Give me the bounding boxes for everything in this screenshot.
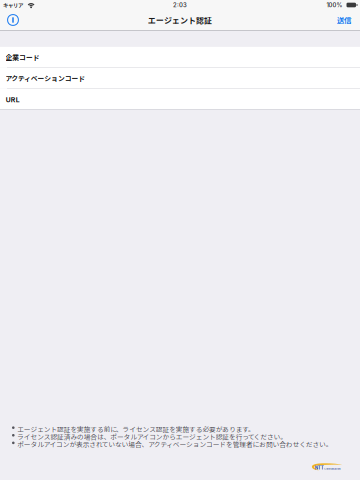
staticText: ポータルアイコンが表示されていない場合、アクティベーションコードを管理者にお問い… <box>17 439 333 449</box>
staticText: キャリア <box>3 1 23 9</box>
staticText: 100% <box>326 1 342 9</box>
button[interactable]: 送信 <box>327 10 351 30</box>
button[interactable]: 企業コード <box>0 47 360 67</box>
staticText: アクティベーションコード <box>5 73 85 83</box>
staticText: 企業コード <box>5 52 40 62</box>
staticText: 2:03 <box>173 1 187 9</box>
staticText: エージェント認証 <box>148 14 212 26</box>
staticText: NTT <box>315 465 324 470</box>
staticText: ライセンス認証済みの場合は、ポータルアイコンからエージェント認証を行ってください… <box>17 432 287 441</box>
staticText: 送信 <box>337 15 351 25</box>
button[interactable]: アクティベーションコード <box>0 68 360 88</box>
staticText: URL <box>5 94 19 104</box>
staticText: Communications <box>324 468 340 470</box>
button[interactable]: 情報 <box>1 10 25 30</box>
staticText: エージェント認証を実施する前に、ライセンス認証を実施する必要があります。 <box>17 424 255 434</box>
button[interactable]: URL <box>0 89 360 109</box>
